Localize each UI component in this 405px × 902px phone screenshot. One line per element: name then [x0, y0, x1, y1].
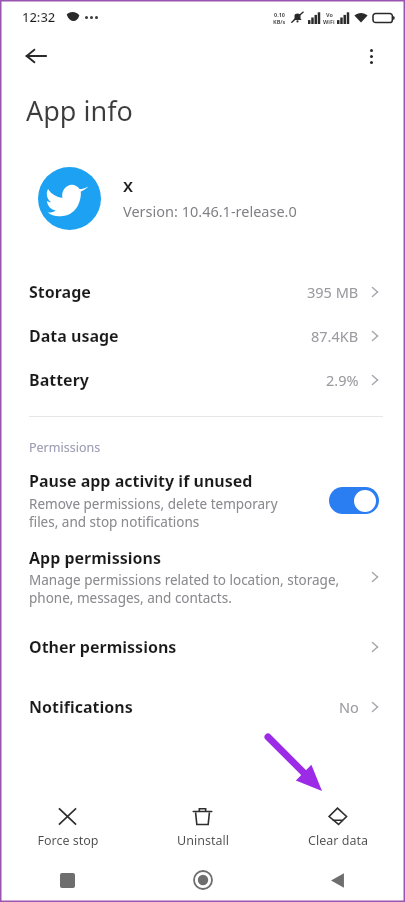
button[interactable]: Force stop [0, 796, 135, 858]
button[interactable]: Pause app activity if unused [0, 470, 405, 531]
button[interactable]: Home [135, 858, 270, 902]
staticText: App info [26, 92, 133, 129]
button[interactable]: Storage [0, 270, 405, 314]
staticText: Other permissions [29, 636, 367, 658]
button[interactable]: Other permissions [0, 625, 405, 669]
staticText: Manage permissions related to location, … [29, 571, 340, 607]
staticText: 0.10 [274, 11, 285, 18]
button[interactable]: Data usage [0, 314, 405, 358]
staticText: Data usage [29, 325, 311, 347]
staticText: App permissions [29, 547, 161, 569]
button[interactable]: Recent apps [0, 858, 135, 902]
button[interactable]: More options [351, 36, 391, 76]
staticText: No [339, 697, 359, 717]
staticText: Storage [29, 281, 307, 303]
button[interactable]: Pause app activity toggle [329, 487, 379, 514]
staticText: 2.9% [326, 370, 359, 390]
button[interactable]: Uninstall [135, 796, 270, 858]
staticText: WiFi [323, 18, 335, 25]
staticText: Uninstall [177, 832, 229, 849]
staticText: Vo [326, 11, 333, 18]
staticText: Clear data [308, 832, 368, 849]
staticText: 87.4KB [311, 326, 359, 346]
staticText: Permissions [29, 439, 101, 456]
staticText: Pause app activity if unused [29, 470, 253, 492]
button[interactable]: Battery [0, 358, 405, 402]
staticText: Battery [29, 369, 326, 391]
staticText: 395 MB [307, 282, 359, 302]
staticText: Notifications [29, 696, 339, 718]
button[interactable]: Back [16, 36, 56, 76]
staticText: 12:32 [22, 8, 56, 26]
staticText: X [123, 176, 134, 196]
staticText: Remove permissions, delete temporary fil… [29, 495, 278, 531]
button[interactable]: App permissions [0, 543, 405, 611]
staticText: Version: 10.46.1-release.0 [123, 201, 297, 221]
staticText: KB/s [273, 18, 286, 25]
staticText: Force stop [37, 832, 99, 849]
button[interactable]: Clear data [270, 796, 405, 858]
button[interactable]: Notifications [0, 685, 405, 729]
button[interactable]: Back [270, 858, 405, 902]
